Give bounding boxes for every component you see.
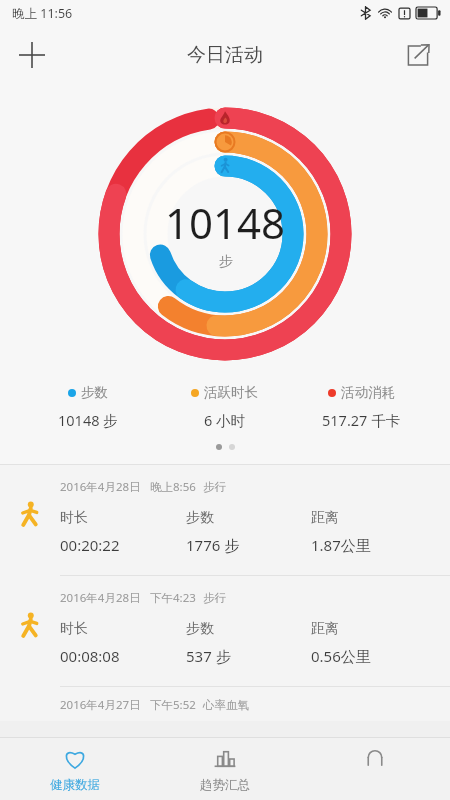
button[interactable]: 活动消耗 — [293, 384, 430, 430]
staticText: 537 步 — [186, 646, 231, 666]
staticText: 时长 — [60, 509, 88, 527]
staticText: 下午5:52 — [150, 697, 196, 713]
staticText: 今日活动 — [187, 43, 263, 67]
staticText: 时长 — [60, 620, 88, 638]
staticText: 10148 步 — [58, 410, 118, 430]
staticText: 00:08:08 — [60, 646, 120, 666]
staticText: 步数 — [186, 620, 214, 638]
staticText: 1776 步 — [186, 535, 240, 555]
staticText: 活跃时长 — [204, 384, 258, 401]
staticText: 2016年4月28日 — [60, 479, 141, 495]
button[interactable]: 活跃时长 — [156, 384, 293, 430]
staticText: 10148 — [165, 194, 286, 251]
staticText: 健康数据 — [50, 777, 100, 793]
staticText: 步数 — [186, 509, 214, 527]
staticText: 步行 — [203, 591, 226, 605]
staticText: 下午4:23 — [150, 590, 196, 606]
staticText: 活动消耗 — [341, 384, 395, 401]
button[interactable]: 2016年4月28日 — [0, 576, 450, 686]
staticText: 步 — [219, 253, 233, 271]
staticText: 6 小时 — [204, 410, 246, 430]
button[interactable]: 健康数据 — [0, 738, 150, 800]
staticText: 晚上 11:56 — [12, 5, 73, 22]
staticText: 517.27 千卡 — [322, 410, 401, 430]
staticText: 步行 — [203, 480, 226, 494]
button[interactable]: 2016年4月27日 — [0, 687, 450, 721]
staticText: 距离 — [311, 509, 339, 527]
staticText: 2016年4月28日 — [60, 590, 141, 606]
staticText: 晚上8:56 — [150, 479, 196, 495]
staticText: 步数 — [81, 384, 108, 401]
staticText: 00:20:22 — [60, 535, 120, 555]
button[interactable]: Device — [300, 738, 450, 800]
button[interactable]: Share — [396, 33, 440, 77]
staticText: 2016年4月27日 — [60, 697, 141, 713]
button[interactable]: 2016年4月28日 — [0, 465, 450, 575]
staticText: 距离 — [311, 620, 339, 638]
button[interactable]: 趋势汇总 — [150, 738, 300, 800]
staticText: 趋势汇总 — [200, 777, 250, 793]
button[interactable]: 步数 — [20, 384, 156, 430]
staticText: 0.56公里 — [311, 646, 371, 666]
button[interactable]: Add — [8, 31, 56, 79]
staticText: 心率血氧 — [203, 698, 249, 712]
staticText: 1.87公里 — [311, 535, 371, 555]
